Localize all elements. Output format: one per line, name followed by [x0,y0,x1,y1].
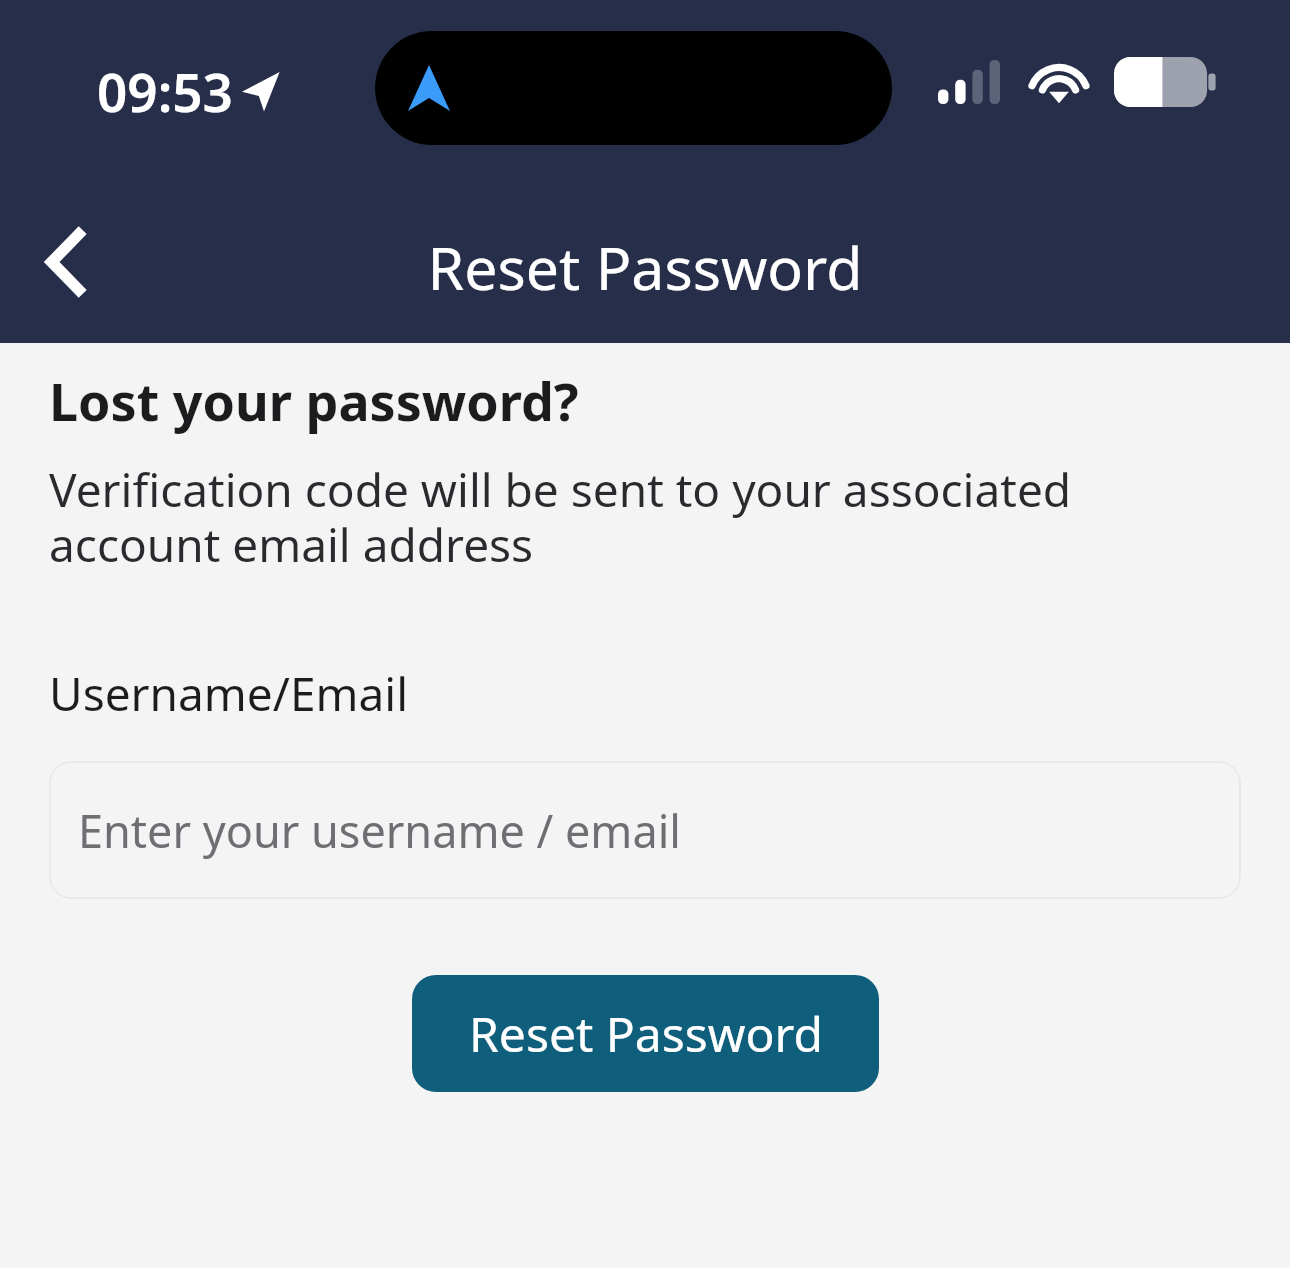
staticText: Username/Email [49,662,409,725]
staticText: Enter your username / email [78,800,681,861]
button[interactable]: Reset Password [412,975,879,1092]
staticText: 09:53 [97,55,233,127]
button[interactable]: Enter your username / email [49,761,1241,899]
staticText: Lost your password? [49,365,579,436]
staticText: Reset Password [0,227,1290,307]
button[interactable]: Back [6,206,126,318]
staticText: Reset Password [469,1001,823,1066]
staticText: Verification code will be sent to your a… [49,458,1241,576]
